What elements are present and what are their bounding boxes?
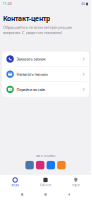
button[interactable]: Facebook: [47, 161, 55, 169]
staticText: Контакт-центр: [3, 14, 50, 23]
button[interactable]: Написать письмо: [2, 67, 89, 82]
button[interactable]: Кабинет: [30, 177, 61, 187]
staticText: Перейти на сайт: [16, 87, 45, 92]
button[interactable]: Home: [44, 193, 47, 196]
staticText: 11:40: [3, 2, 12, 6]
staticText: 4G: [81, 2, 85, 6]
staticText: Написать письмо: [16, 71, 47, 77]
staticText: Мы в соцсетях: [36, 154, 55, 158]
button[interactable]: Перейти на сайт: [2, 82, 89, 97]
button[interactable]: Услуги: [0, 177, 30, 187]
staticText: Услуги: [11, 183, 19, 187]
staticText: Обращайтесь по всем интересующим вопроса…: [3, 24, 72, 35]
button[interactable]: Одноклассники: [57, 161, 66, 169]
staticText: Заказать звонок: [16, 56, 45, 62]
button[interactable]: Instagram: [36, 161, 44, 169]
button[interactable]: Recents: [21, 193, 23, 196]
button[interactable]: Back: [68, 193, 70, 196]
staticText: Кабинет: [40, 183, 51, 187]
button[interactable]: ВКонтакте: [25, 161, 34, 169]
staticText: Карта: [72, 183, 79, 187]
button[interactable]: Заказать звонок: [2, 52, 89, 66]
button[interactable]: Карта: [61, 177, 91, 187]
